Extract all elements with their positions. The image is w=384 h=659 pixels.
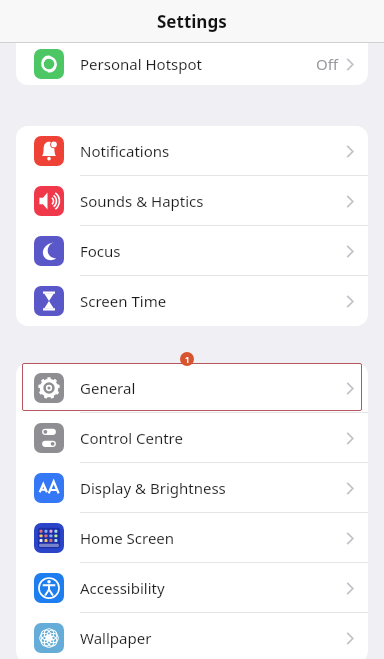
other: Personal Hotspot — [34, 49, 64, 79]
staticText: Display & Brightness — [80, 478, 226, 498]
other: Screen Time — [34, 286, 64, 316]
staticText: Notifications — [80, 141, 170, 161]
button[interactable]: Personal Hotspot — [16, 43, 368, 85]
other: Display and Brightness — [34, 473, 64, 503]
button[interactable]: Focus — [16, 226, 368, 276]
staticText: Personal Hotspot — [80, 54, 202, 74]
button[interactable]: Accessibility — [16, 563, 368, 613]
button[interactable]: Home Screen — [16, 513, 368, 563]
other: Control Centre — [34, 423, 64, 453]
button[interactable]: Sounds and Haptics — [16, 176, 368, 226]
button[interactable]: General — [16, 363, 368, 413]
staticText: Settings — [157, 10, 227, 33]
staticText: Wallpaper — [80, 628, 152, 648]
staticText: Focus — [80, 241, 121, 261]
staticText: Home Screen — [80, 528, 175, 548]
other: Notifications — [34, 136, 64, 166]
button[interactable]: Control Centre — [16, 413, 368, 463]
button[interactable]: Notifications — [16, 126, 368, 176]
staticText: Screen Time — [80, 291, 167, 311]
other: Sounds and Haptics — [34, 186, 64, 216]
staticText: 1 — [185, 354, 190, 365]
other: Home Screen — [34, 523, 64, 553]
button[interactable]: Display and Brightness — [16, 463, 368, 513]
staticText: General — [80, 378, 136, 398]
staticText: Control Centre — [80, 428, 183, 448]
other: Wallpaper — [34, 623, 64, 653]
staticText: Accessibility — [80, 578, 165, 598]
staticText: Off — [316, 54, 339, 74]
button[interactable]: Screen Time — [16, 276, 368, 326]
staticText: Sounds & Haptics — [80, 191, 204, 211]
button[interactable]: Wallpaper — [16, 613, 368, 659]
other: General — [34, 373, 64, 403]
other: Focus — [34, 236, 64, 266]
other: Accessibility — [34, 573, 64, 603]
